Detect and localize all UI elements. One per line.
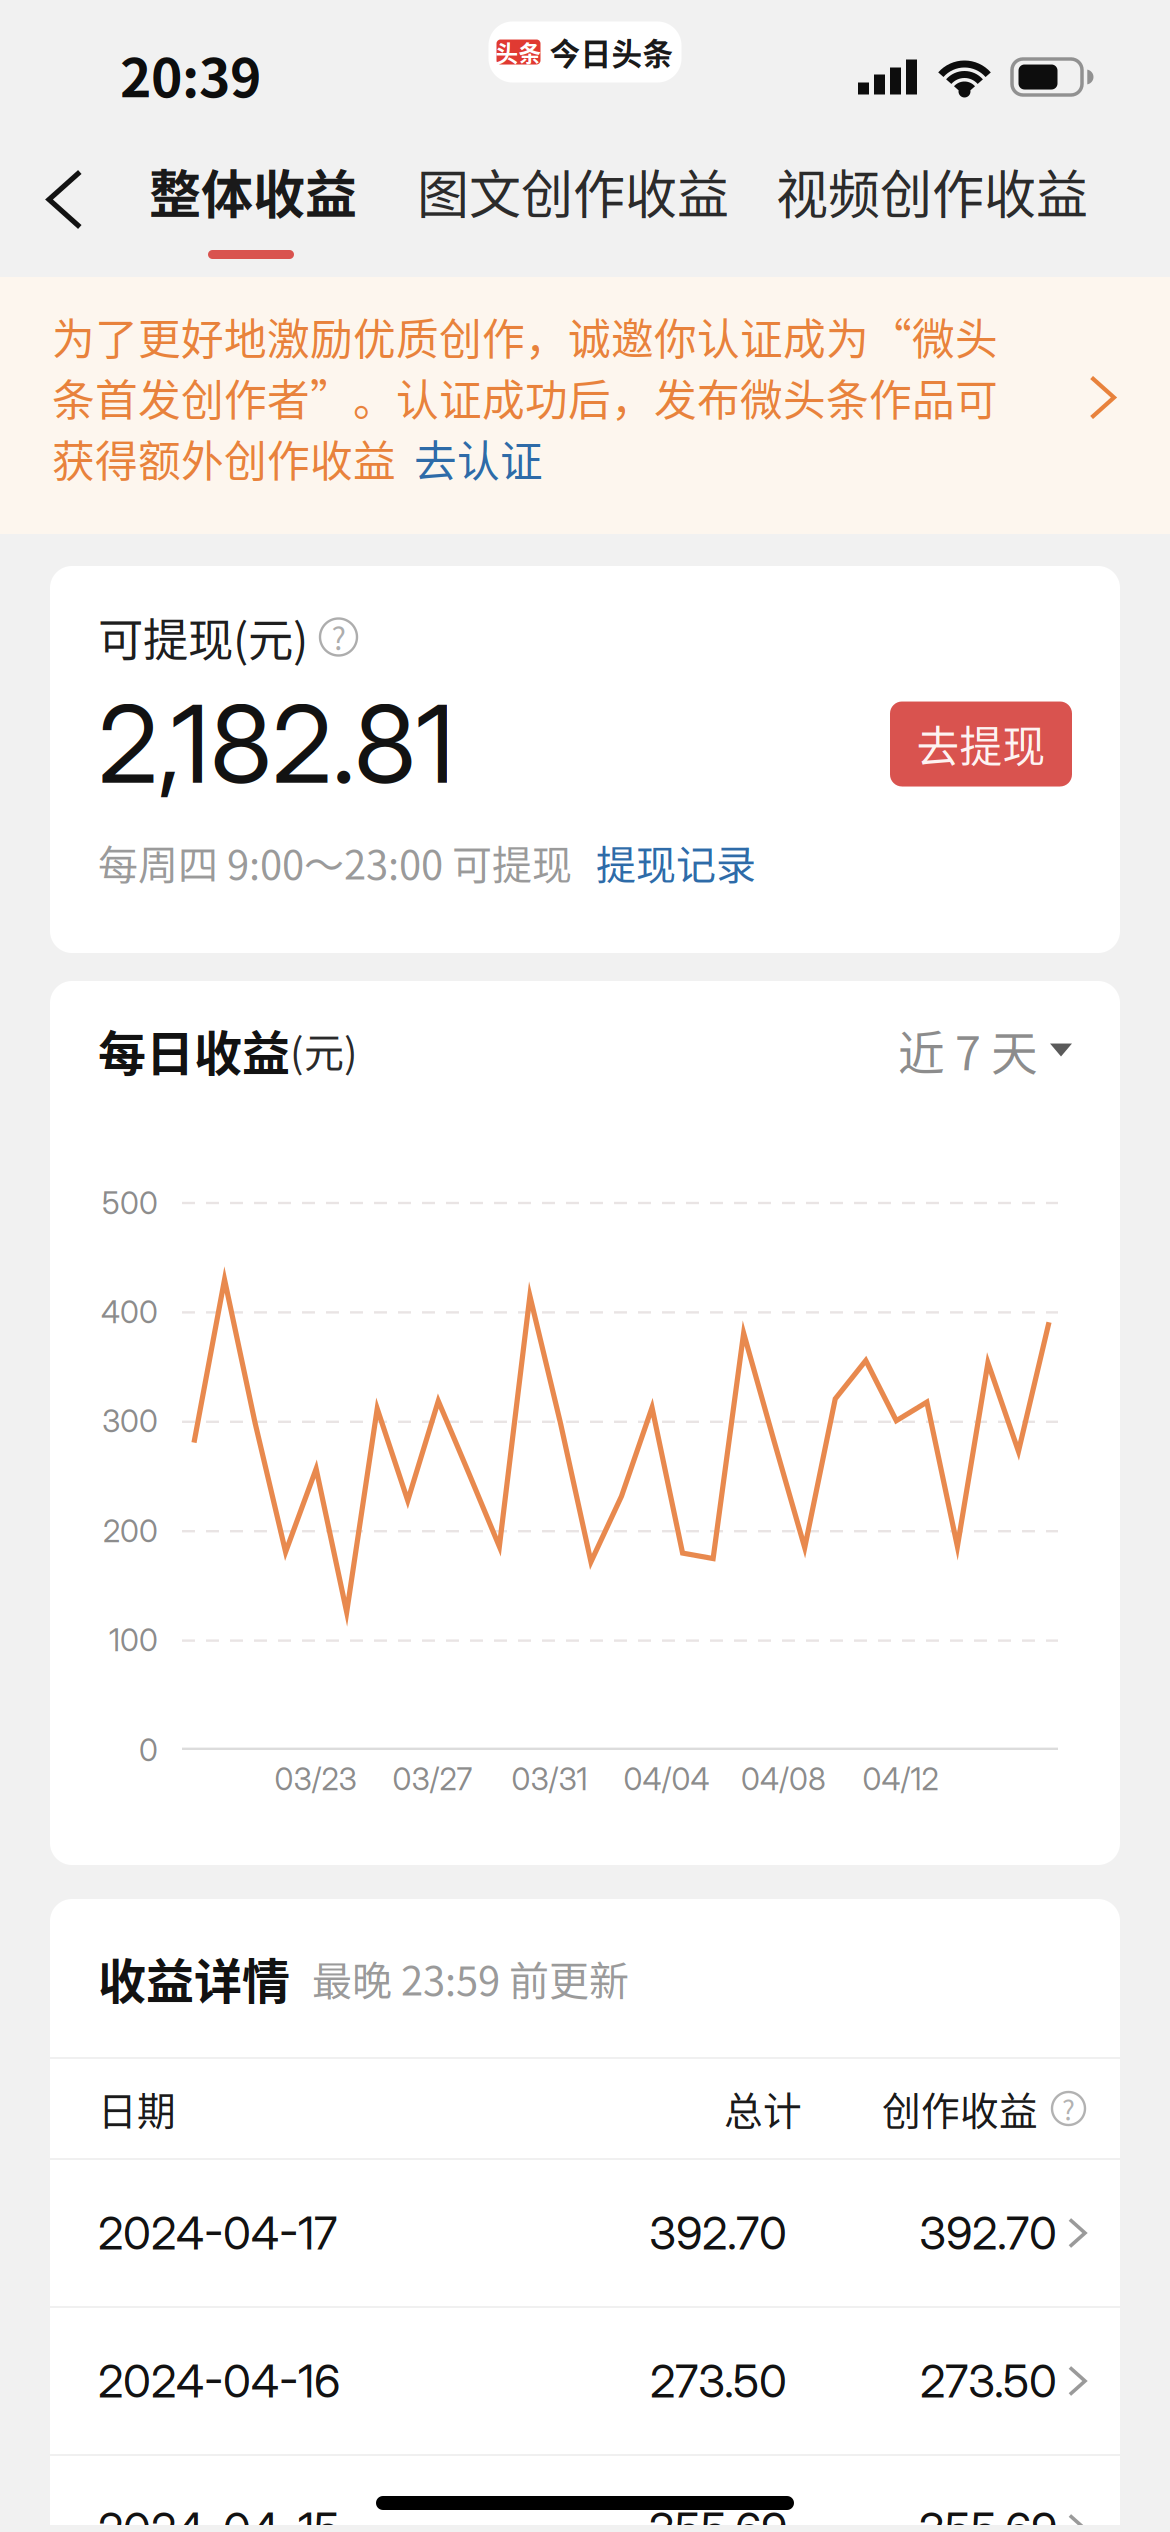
staticText: 近 7 天 — [898, 1016, 1038, 1084]
staticText: 为了更好地激励优质创作，诚邀你认证成为“微头 — [52, 306, 998, 367]
staticText: ? — [1062, 2089, 1075, 2128]
button[interactable]: 2024-04-17 — [50, 2160, 1120, 2306]
staticText: 图文创作收益 — [417, 153, 729, 229]
staticText: 2024-04-17 — [98, 2206, 337, 2260]
staticText: ? — [331, 615, 345, 659]
staticText: 273.50 — [920, 2354, 1057, 2408]
staticText: 392.70 — [649, 2206, 787, 2260]
staticText: 03/31 — [511, 1760, 587, 1797]
staticText: 今日头条 — [549, 30, 673, 74]
staticText: 去认证 — [414, 428, 543, 489]
staticText: 条首发创作者”。认证成功后，发布微头条作品可 — [52, 367, 998, 428]
staticText: 273.50 — [650, 2354, 787, 2408]
button[interactable]: 整体收益 — [149, 135, 417, 277]
staticText: 创作收益 — [882, 2080, 1038, 2136]
staticText: (元) — [290, 1021, 358, 1079]
button[interactable]: 视频创作收益 — [776, 135, 1144, 277]
staticText: 日期 — [98, 2080, 176, 2136]
button[interactable]: 去提现 — [890, 701, 1072, 786]
staticText: 获得额外创作收益 — [52, 428, 396, 489]
button[interactable]: 返回 — [0, 135, 149, 277]
staticText: 20:39 — [120, 35, 261, 113]
staticText: 整体收益 — [149, 153, 357, 229]
staticText: 每周四 9:00～23:00 可提现 — [98, 833, 572, 891]
staticText: 最晚 23:59 前更新 — [312, 1949, 629, 2007]
staticText: 400 — [101, 1293, 158, 1330]
staticText: 355.69 — [918, 2502, 1057, 2532]
button[interactable]: 2024-04-16 — [50, 2308, 1120, 2454]
button[interactable]: 近 7 天 — [898, 1016, 1072, 1084]
staticText: 2,182.81 — [98, 679, 455, 809]
staticText: 收益详情 — [98, 1943, 290, 2013]
staticText: 可提现(元) — [98, 604, 308, 670]
staticText: 每日收益 — [98, 1015, 290, 1085]
staticText: 04/12 — [862, 1760, 938, 1797]
staticText: 0 — [139, 1731, 158, 1768]
staticText: 300 — [102, 1402, 158, 1439]
staticText: 100 — [109, 1621, 158, 1658]
staticText: 去提现 — [916, 713, 1045, 775]
button[interactable]: 2024-04-15 — [50, 2456, 1120, 2532]
staticText: 355.69 — [648, 2502, 787, 2532]
staticText: 03/23 — [274, 1760, 356, 1797]
staticText: 2024-04-15 — [98, 2502, 340, 2532]
staticText: 头条 — [495, 36, 541, 68]
button[interactable]: 为了更好地激励优质创作，诚邀你认证成为“微头 — [0, 277, 1170, 534]
staticText: 2024-04-16 — [98, 2354, 340, 2408]
staticText: 392.70 — [919, 2206, 1057, 2260]
staticText: 04/04 — [623, 1760, 709, 1797]
staticText: 总计 — [724, 2080, 802, 2136]
staticText: 提现记录 — [596, 833, 756, 891]
staticText: 04/08 — [741, 1760, 826, 1797]
button[interactable]: 图文创作收益 — [417, 135, 776, 277]
staticText: 500 — [102, 1184, 158, 1221]
staticText: 200 — [103, 1512, 158, 1549]
button[interactable]: 提现记录 — [596, 833, 756, 891]
staticText: 视频创作收益 — [776, 153, 1088, 229]
staticText: 03/27 — [392, 1760, 472, 1797]
